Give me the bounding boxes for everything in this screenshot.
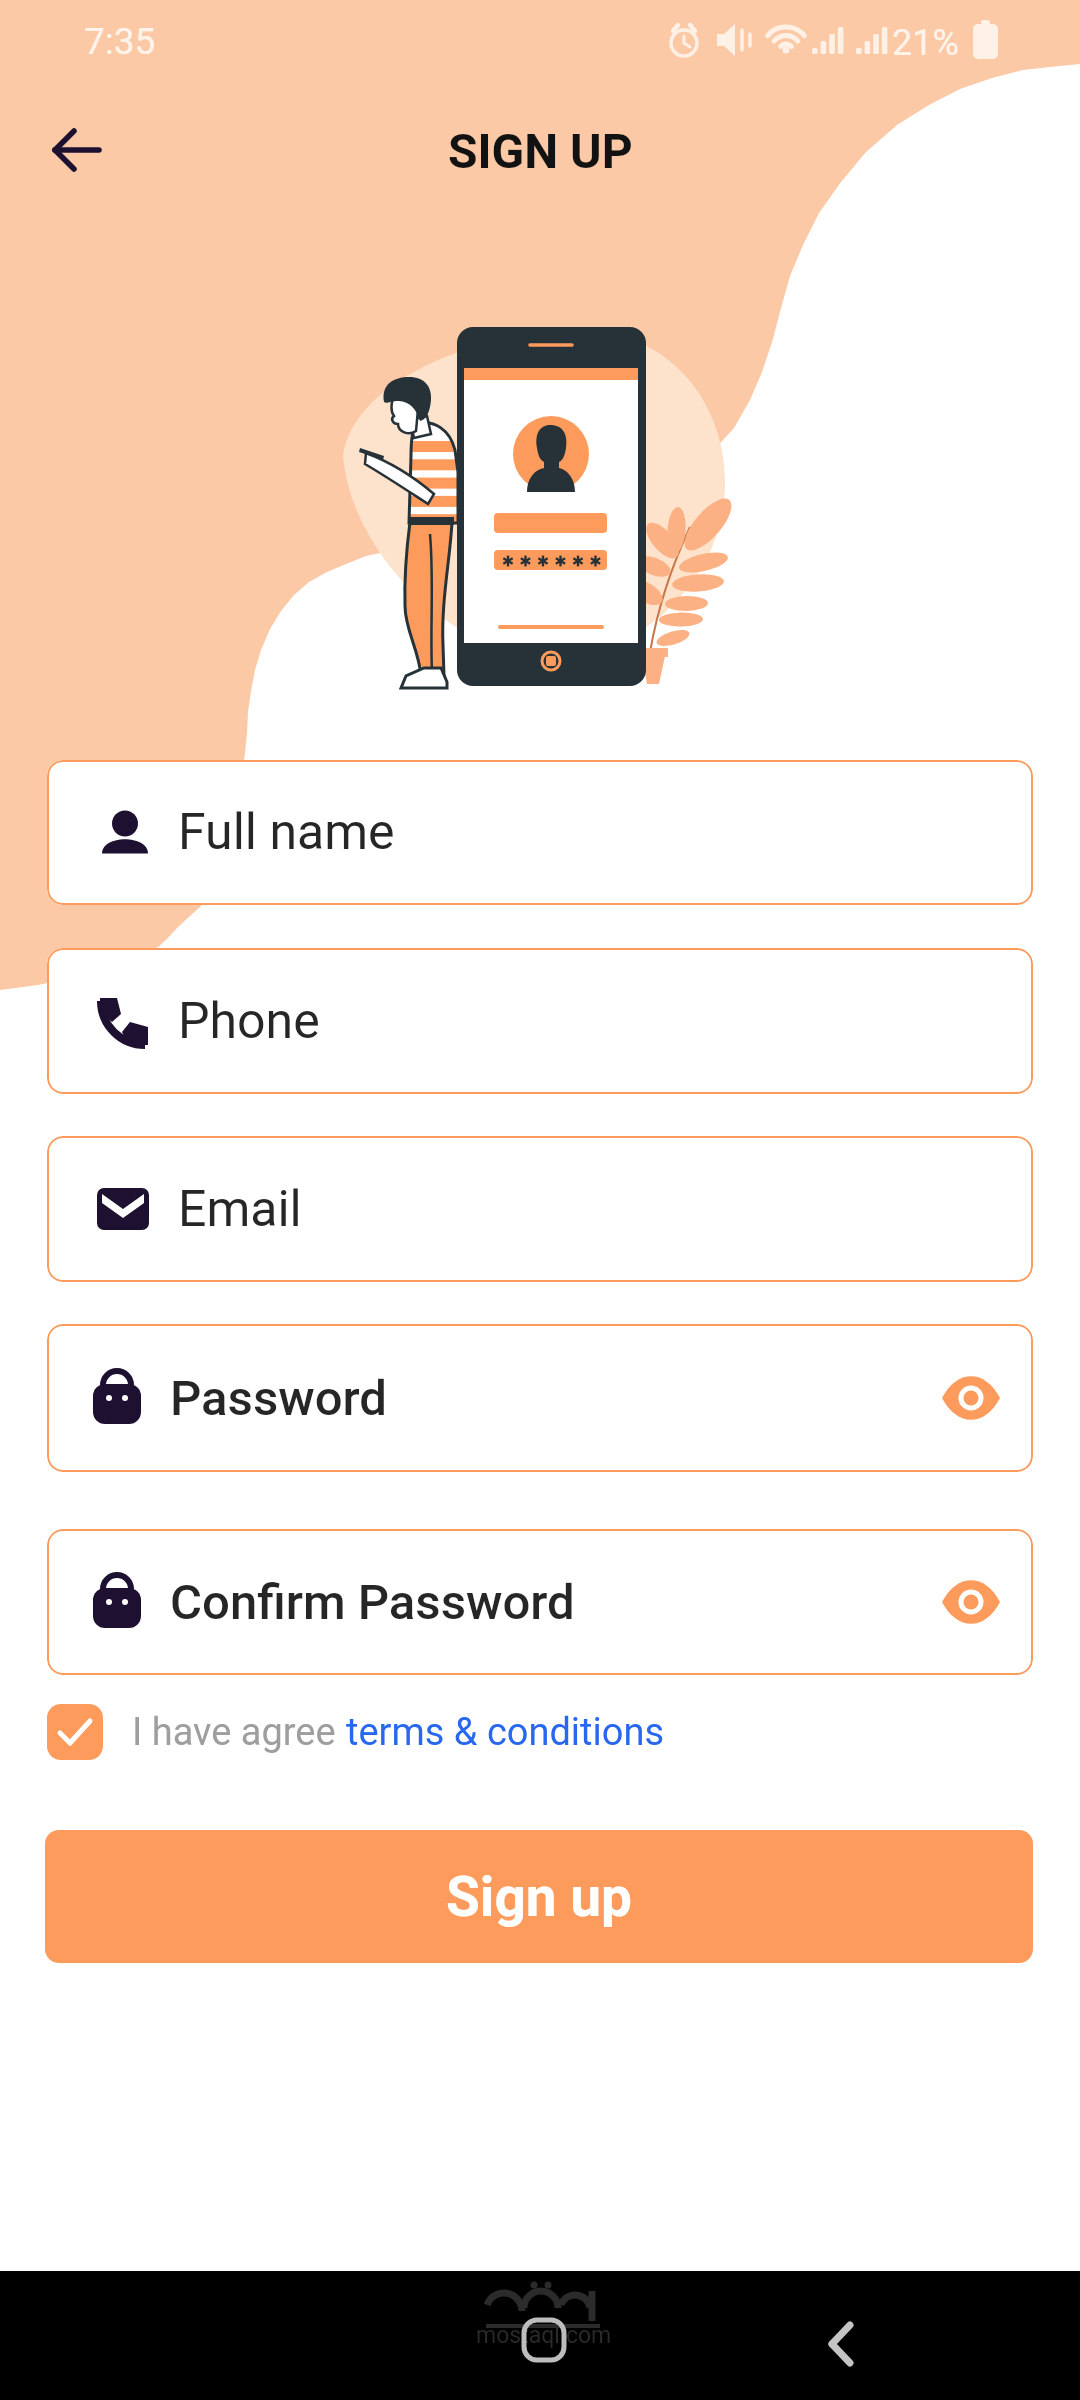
staticText: terms & conditions — [346, 1710, 665, 1755]
staticText: Sign up — [446, 1865, 633, 1929]
button[interactable]: Email — [47, 1136, 1033, 1282]
button[interactable]: Password — [47, 1324, 1033, 1472]
button[interactable]: Back — [818, 2313, 878, 2373]
staticText: Email — [178, 1180, 302, 1239]
button[interactable]: I have agree — [47, 1702, 665, 1762]
button[interactable]: Phone — [47, 948, 1033, 1094]
button[interactable]: Sign up — [45, 1830, 1033, 1963]
staticText: Full name — [178, 803, 395, 862]
staticText: Phone — [178, 992, 320, 1051]
staticText: Password — [170, 1370, 388, 1427]
staticText: 21% — [892, 22, 959, 64]
staticText: I have agree — [132, 1710, 346, 1755]
staticText: mostaql.com — [476, 2322, 612, 2349]
staticText: SIGN UP — [448, 123, 633, 179]
button[interactable]: Full name — [47, 760, 1033, 905]
staticText: 7:35 — [84, 20, 156, 63]
button[interactable]: Confirm Password — [47, 1529, 1033, 1675]
button[interactable]: Home — [520, 2316, 568, 2364]
button[interactable]: Back — [37, 110, 117, 190]
staticText: Confirm Password — [170, 1574, 575, 1631]
